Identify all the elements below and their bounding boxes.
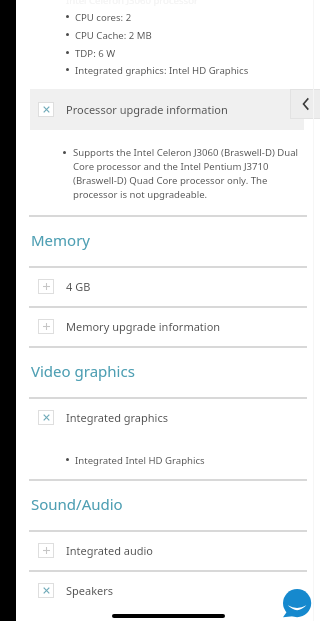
staticText: Speakers — [66, 583, 114, 598]
button[interactable]: Processor upgrade information — [30, 89, 304, 130]
button[interactable]: Speakers — [29, 571, 307, 610]
staticText: Memory upgrade information — [66, 319, 221, 334]
staticText: CPU cores: 2 — [75, 11, 132, 24]
staticText: Integrated Intel HD Graphics — [75, 454, 205, 467]
button[interactable]: Memory upgrade information — [29, 307, 307, 346]
staticText: Processor upgrade information — [66, 102, 228, 117]
button[interactable]: Collapse section — [290, 89, 320, 119]
staticText: Integrated graphics — [66, 410, 168, 425]
button[interactable]: Chat with us — [283, 589, 313, 619]
staticText: Integrated graphics: Intel HD Graphics — [75, 64, 249, 77]
staticText: Sound/Audio — [31, 494, 123, 514]
staticText: Intel Celeron J3060 processor — [66, 0, 198, 7]
staticText: CPU Cache: 2 MB — [75, 29, 152, 42]
staticText: 4 GB — [66, 279, 91, 294]
staticText: Video graphics — [31, 361, 135, 381]
button[interactable]: Integrated graphics — [29, 398, 307, 437]
staticText: Supports the Intel Celeron J3060 (Braswe… — [73, 146, 311, 201]
button[interactable]: Integrated audio — [29, 531, 307, 570]
staticText: TDP: 6 W — [75, 47, 116, 60]
staticText: Memory — [31, 230, 91, 250]
staticText: Integrated audio — [66, 543, 153, 558]
button[interactable]: 4 GB — [29, 267, 307, 306]
